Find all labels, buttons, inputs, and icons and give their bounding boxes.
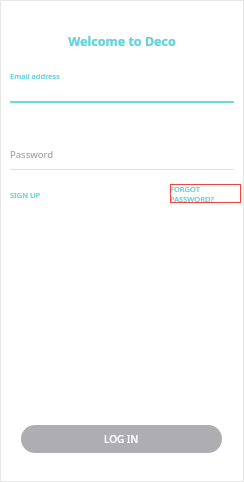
button[interactable]: LOG IN bbox=[21, 425, 222, 453]
staticText: Welcome to Deco bbox=[0, 33, 244, 50]
staticText: LOG IN bbox=[104, 432, 139, 446]
staticText: Email address bbox=[10, 71, 60, 81]
staticText: Password bbox=[10, 148, 53, 161]
staticText: SIGN UP bbox=[10, 190, 41, 200]
staticText: FORGOT PASSWORD? bbox=[170, 184, 241, 203]
button[interactable]: FORGOT PASSWORD? bbox=[170, 184, 241, 203]
button[interactable]: SIGN UP bbox=[8, 188, 43, 202]
